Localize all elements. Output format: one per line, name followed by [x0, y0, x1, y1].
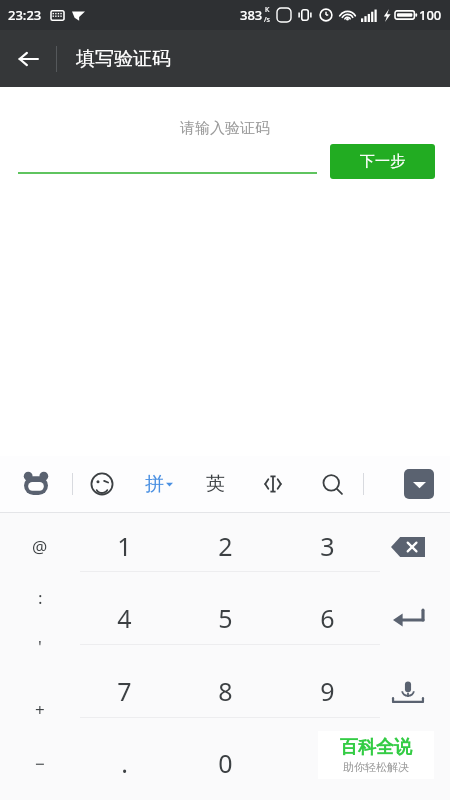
button[interactable]: 3 — [277, 518, 377, 574]
button[interactable]: 英 — [187, 456, 244, 512]
button[interactable]: ' — [0, 622, 80, 670]
staticText: 8 — [218, 674, 233, 708]
button[interactable]: 7 — [74, 663, 174, 719]
staticText: 23:23 — [8, 6, 42, 24]
staticText: − — [35, 752, 45, 775]
button[interactable]: Baidu input settings — [0, 456, 72, 512]
button[interactable]: 5 — [175, 590, 275, 646]
staticText: /s — [264, 15, 270, 25]
staticText: 拼 — [145, 472, 164, 496]
button[interactable]: 8 — [175, 663, 275, 719]
button[interactable]: Enter — [378, 597, 438, 641]
staticText: 6 — [320, 601, 335, 635]
button[interactable]: . — [74, 735, 174, 791]
staticText: 9 — [320, 674, 335, 708]
staticText: 4 — [117, 601, 132, 635]
button[interactable]: Emoji — [73, 456, 130, 512]
button[interactable]: Move cursor — [244, 456, 301, 512]
button[interactable]: 下一步 — [330, 144, 435, 179]
staticText: @ — [32, 535, 48, 558]
staticText: 百科全说 — [340, 736, 412, 759]
staticText: 0 — [218, 746, 233, 780]
button[interactable]: 9 — [277, 663, 377, 719]
staticText: 英 — [206, 472, 225, 496]
staticText: . — [121, 746, 128, 780]
staticText: 3 — [320, 529, 335, 563]
button[interactable]: Back — [0, 31, 56, 87]
button[interactable]: Symbols — [378, 745, 438, 789]
button[interactable]: Voice input — [378, 669, 438, 719]
staticText: 5 — [218, 601, 233, 635]
staticText: 填写验证码 — [76, 47, 171, 71]
staticText: 下一步 — [360, 152, 405, 171]
button[interactable]: 1 — [74, 518, 174, 574]
button[interactable]: 2 — [175, 518, 275, 574]
button[interactable]: − — [0, 739, 80, 787]
staticText: 7 — [117, 674, 132, 708]
staticText: 助你轻松解决 — [343, 760, 409, 774]
button[interactable]: : — [0, 573, 80, 621]
staticText: 100 — [419, 6, 442, 24]
button[interactable]: 拼 — [130, 456, 187, 512]
staticText: + — [35, 698, 45, 721]
button[interactable]: 0 — [175, 735, 275, 791]
button[interactable]: 4 — [74, 590, 174, 646]
staticText: 383 — [240, 6, 263, 24]
staticText: 2 — [218, 529, 233, 563]
button[interactable]: 6 — [277, 590, 377, 646]
button[interactable]: Backspace — [378, 525, 438, 569]
button[interactable]: Hide keyboard — [404, 469, 434, 499]
staticText: ' — [38, 635, 42, 658]
staticText: 1 — [117, 529, 132, 563]
staticText: : — [38, 586, 43, 609]
button[interactable]: @ — [0, 522, 80, 570]
button[interactable]: Search — [301, 456, 363, 512]
staticText: K — [265, 5, 270, 15]
staticText: 请输入验证码 — [180, 119, 270, 138]
button[interactable]: + — [0, 685, 80, 733]
